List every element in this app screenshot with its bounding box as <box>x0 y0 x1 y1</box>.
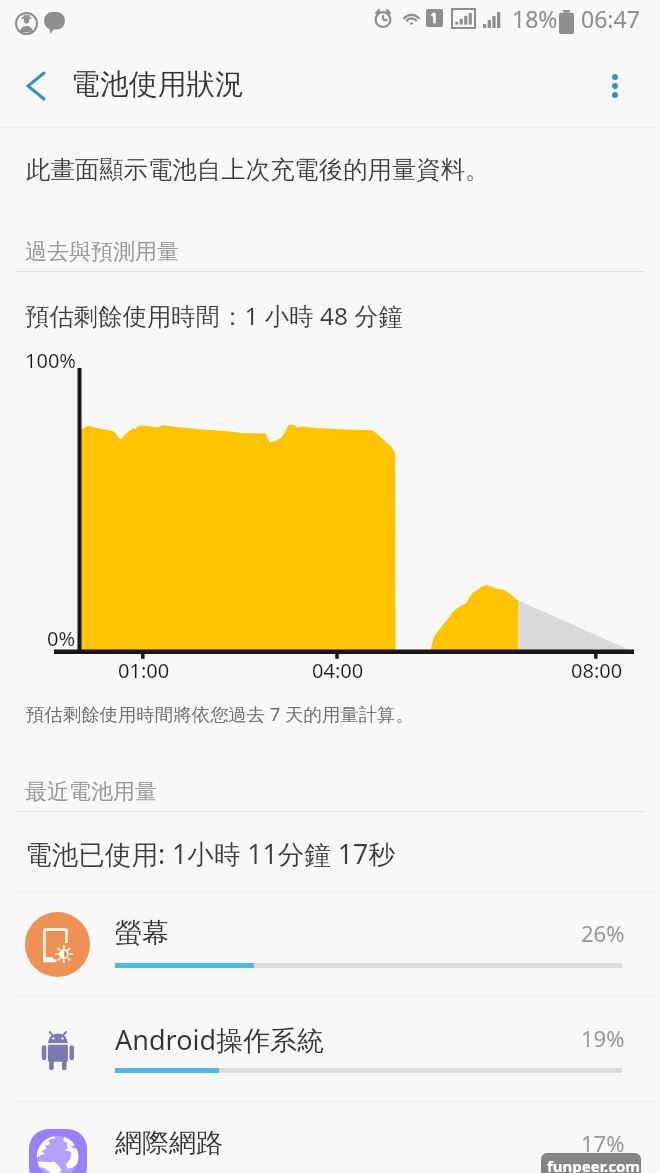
button[interactable]: Android操作系統 <box>0 996 660 1101</box>
staticText: 100% <box>25 347 76 374</box>
staticText: 預估剩餘使用時間將依您過去 7 天的用量計算。 <box>26 701 414 726</box>
button[interactable]: Back <box>8 58 64 114</box>
staticText: 04:00 <box>312 657 364 684</box>
staticText: 18% <box>512 3 558 34</box>
staticText: 電池已使用: 1小時 11分鐘 17秒 <box>25 836 395 872</box>
staticText: 過去與預測用量 <box>25 238 179 266</box>
button[interactable]: More options <box>587 58 643 114</box>
staticText: 螢幕 <box>115 916 169 950</box>
staticText: 26% <box>581 918 625 948</box>
button[interactable]: 螢幕 <box>0 891 660 996</box>
staticText: 01:00 <box>118 657 170 684</box>
staticText: 19% <box>581 1023 625 1053</box>
staticText: 17% <box>581 1128 625 1158</box>
staticText: 此畫面顯示電池自上次充電後的用量資料。 <box>26 155 490 186</box>
staticText: 0% <box>47 625 76 652</box>
staticText: 電池使用狀況 <box>71 66 244 102</box>
staticText: funpeer.com <box>547 1156 640 1173</box>
staticText: Android操作系統 <box>115 1021 325 1058</box>
staticText: 預估剩餘使用時間：1 小時 48 分鐘 <box>25 299 403 332</box>
staticText: 06:47 <box>581 3 640 34</box>
staticText: 最近電池用量 <box>25 778 157 806</box>
staticText: 網際網路 <box>115 1126 223 1160</box>
staticText: 08:00 <box>571 657 623 684</box>
button[interactable]: 網際網路 <box>0 1101 660 1173</box>
